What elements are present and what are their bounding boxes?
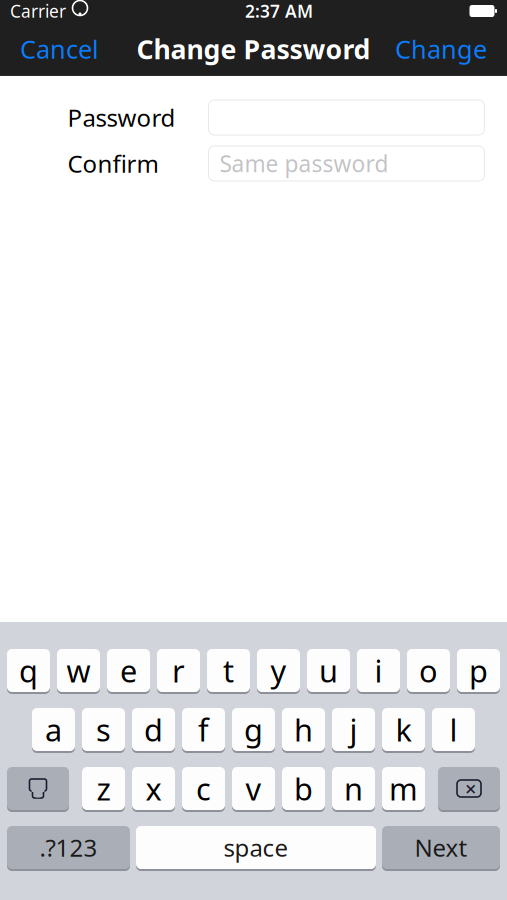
staticText: q [19, 650, 38, 691]
button[interactable]: a [32, 708, 75, 753]
staticText: .?123 [39, 832, 97, 863]
staticText: Carrier [10, 0, 66, 22]
staticText: × [465, 775, 476, 802]
button[interactable]: i [357, 649, 400, 694]
button[interactable]: y [257, 649, 300, 694]
button[interactable]: n [332, 767, 375, 812]
staticText: x [145, 768, 161, 809]
staticText: v [245, 768, 261, 809]
button[interactable]: c [182, 767, 225, 812]
staticText: a [45, 709, 62, 750]
button[interactable]: l [432, 708, 475, 753]
button[interactable]: d [132, 708, 175, 753]
staticText: o [419, 650, 438, 691]
staticText: y [270, 650, 286, 691]
staticText: n [344, 768, 363, 809]
button[interactable]: h [282, 708, 325, 753]
staticText: Next [414, 832, 467, 863]
button[interactable]: u [307, 649, 350, 694]
staticText: e [120, 650, 137, 691]
button[interactable]: w [57, 649, 100, 694]
staticText: s [96, 709, 111, 750]
staticText: u [319, 650, 338, 691]
button[interactable]: m [382, 767, 425, 812]
button[interactable]: z [82, 767, 125, 812]
staticText: 2:37 AM [245, 0, 313, 22]
staticText: h [294, 709, 313, 750]
button[interactable]: q [7, 649, 50, 694]
button[interactable]: k [382, 708, 425, 753]
staticText: space [223, 832, 288, 863]
staticText: g [244, 709, 263, 750]
staticText: i [374, 650, 382, 691]
staticText: d [144, 709, 163, 750]
button[interactable]: v [232, 767, 275, 812]
staticText: Change Password [136, 31, 370, 67]
staticText: l [449, 709, 457, 750]
button[interactable]: f [182, 708, 225, 753]
staticText: Password [67, 102, 175, 133]
staticText: m [389, 768, 418, 809]
button[interactable]: b [282, 767, 325, 812]
staticText: z [96, 768, 110, 809]
button[interactable]: Change [383, 24, 499, 74]
button[interactable]: t [207, 649, 250, 694]
staticText: Same password [219, 148, 388, 178]
button[interactable]: g [232, 708, 275, 753]
staticText: Cancel [20, 32, 99, 66]
staticText: p [469, 650, 488, 691]
button[interactable]: Next [382, 826, 500, 871]
staticText: j [349, 709, 357, 750]
staticText: r [172, 650, 185, 691]
button[interactable]: j [332, 708, 375, 753]
staticText: t [223, 650, 234, 691]
button[interactable]: Shift [7, 767, 69, 812]
staticText: b [294, 768, 313, 809]
button[interactable]: Same password [208, 146, 484, 181]
staticText: Change [395, 32, 487, 66]
button[interactable]: x [132, 767, 175, 812]
button[interactable]: o [407, 649, 450, 694]
staticText: f [198, 709, 209, 750]
staticText: c [196, 768, 211, 809]
button[interactable]: e [107, 649, 150, 694]
button[interactable]: Delete [438, 767, 500, 812]
button[interactable] [208, 100, 484, 135]
button[interactable]: r [157, 649, 200, 694]
button[interactable]: space [136, 826, 376, 871]
button[interactable]: .?123 [7, 826, 130, 871]
button[interactable]: Cancel [8, 24, 111, 74]
button[interactable]: p [457, 649, 500, 694]
staticText: Confirm [67, 148, 158, 179]
button[interactable]: s [82, 708, 125, 753]
staticText: k [395, 709, 411, 750]
staticText: w [66, 650, 90, 691]
